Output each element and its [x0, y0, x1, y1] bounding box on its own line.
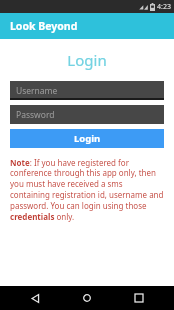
staticText: Look Beyond — [10, 19, 78, 33]
staticText: Login — [10, 50, 164, 70]
staticText: Note: If you have registered for confere… — [10, 157, 164, 223]
button[interactable]: Home — [70, 286, 104, 310]
button[interactable]: Password — [10, 105, 164, 124]
button[interactable]: Username — [10, 81, 164, 100]
button[interactable]: Back — [18, 286, 52, 310]
staticText: Username — [16, 85, 58, 97]
button[interactable]: Recent apps — [122, 286, 156, 310]
staticText: Login — [74, 132, 101, 145]
button[interactable]: Login — [10, 129, 164, 148]
staticText: Password — [16, 109, 55, 121]
staticText: 4:23 — [157, 2, 171, 12]
